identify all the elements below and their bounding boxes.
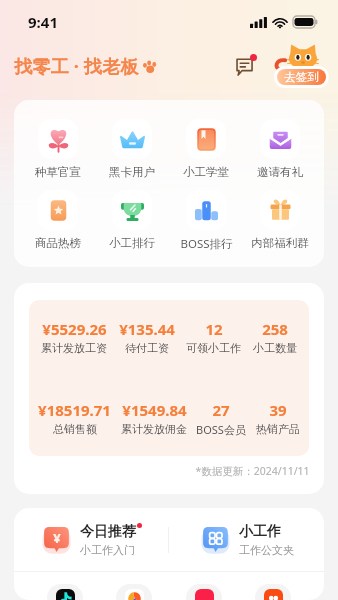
staticText: 种草官宣 [35,165,81,179]
staticText: 小工学堂 [183,165,229,179]
button[interactable]: BOSS排行 [176,190,236,252]
button[interactable]: 商品热榜 [28,190,88,250]
staticText: 今日推荐 [80,523,136,541]
staticText: 邀请有礼 [257,165,303,179]
staticText: 找零工 · 找老板 [14,54,139,79]
staticText: 39 [269,400,287,420]
button[interactable]: 内部福利群 [250,190,310,250]
button[interactable]: Photos [116,584,152,600]
staticText: 小工作 [239,523,281,541]
staticText: 12 [205,319,223,339]
staticText: ¥5529.26 [42,319,107,339]
staticText: 27 [212,400,230,420]
staticText: 258 [262,319,288,339]
staticText: 可领小工作 [186,341,241,355]
staticText: BOSS会员 [196,422,246,437]
staticText: *数据更新：2024/11/11 [195,464,310,478]
staticText: 累计发放佣金 [121,422,187,436]
staticText: 热销产品 [256,422,300,436]
staticText: ¥ [53,529,61,547]
staticText: 小工作入门 [80,543,135,557]
staticText: ¥18519.71 [38,400,111,420]
staticText: 总销售额 [53,422,97,436]
staticText: ¥1549.84 [122,400,187,420]
button[interactable]: ¥ [14,508,168,571]
button[interactable]: 去签到 [277,69,326,85]
staticText: ¥135.44 [119,319,175,339]
staticText: 小工数量 [253,341,297,355]
button[interactable]: 小工作 [169,508,324,571]
staticText: 小工排行 [109,236,155,250]
button[interactable]: 黑卡用户 [102,119,162,179]
staticText: 商品热榜 [35,236,81,250]
button[interactable]: Douyin [47,584,83,600]
button[interactable]: 种草官宣 [28,119,88,179]
button[interactable]: Messages [230,53,256,79]
staticText: 黑卡用户 [109,165,155,179]
staticText: 累计发放工资 [41,341,107,355]
staticText: 内部福利群 [251,236,309,250]
staticText: 工作公文夹 [239,543,294,557]
staticText: 去签到 [284,70,319,84]
staticText: 待付工资 [125,341,169,355]
button[interactable]: 小工学堂 [176,119,236,179]
staticText: 9:41 [28,12,58,32]
staticText: BOSS排行 [180,236,233,252]
button[interactable]: App [186,584,222,600]
button[interactable]: 小工排行 [102,190,162,250]
button[interactable]: 邀请有礼 [250,119,310,179]
button[interactable]: App [255,584,291,600]
